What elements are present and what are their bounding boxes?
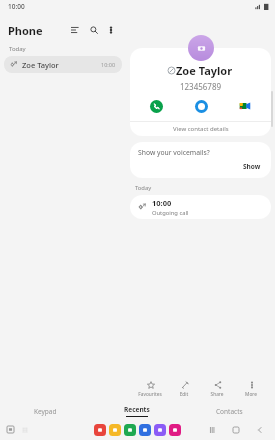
staticText: Show [243,162,261,171]
button[interactable]: Call [148,98,164,114]
button[interactable]: Recents [91,403,183,419]
button[interactable]: Apps [19,424,30,435]
staticText: Show your voicemails? [138,148,210,157]
button[interactable]: More [235,380,267,398]
staticText: Contacts [216,407,243,416]
staticText: Zoe Taylor [176,63,233,78]
staticText: Favourites [134,391,166,398]
button[interactable]: Message [193,98,209,114]
staticText: 123456789 [130,81,271,92]
staticText: Today [135,184,152,192]
button[interactable]: View contact details [130,122,271,136]
button[interactable]: Keypad [0,403,91,419]
button[interactable]: Video call [237,98,253,114]
staticText: Outgoing call [152,209,189,217]
button[interactable]: App 1 [109,424,121,436]
button[interactable]: 10:00 [130,195,271,219]
staticText: Edit [168,391,200,398]
button[interactable]: Multi window [5,424,16,435]
staticText: Phone [8,23,43,38]
button[interactable]: Favourites [134,380,166,398]
button[interactable]: Zoe Taylor [4,56,122,73]
staticText: 10:00 [101,61,116,68]
button[interactable]: App 3 [139,424,151,436]
staticText: Recents [124,405,150,414]
button[interactable]: App 2 [124,424,136,436]
button[interactable]: Edit [168,380,200,398]
button[interactable]: Recent apps [205,423,219,437]
button[interactable]: Share [201,380,233,398]
button[interactable]: Contacts [183,403,275,419]
staticText: View contact details [173,125,229,133]
button[interactable]: App 4 [154,424,166,436]
button[interactable]: Back [253,423,267,437]
staticText: Keypad [34,407,57,416]
button[interactable]: More options [104,23,118,37]
button[interactable]: Home [229,423,243,437]
button[interactable]: App 0 [94,424,106,436]
staticText: 10:00 [8,2,25,11]
staticText: Zoe Taylor [22,60,59,70]
button[interactable]: Show [241,161,263,172]
staticText: 10:00 [152,198,172,208]
staticText: Today [9,45,26,53]
staticText: Share [201,391,233,398]
button[interactable]: Search [86,22,102,38]
staticText: More [235,391,267,398]
button[interactable]: App 5 [169,424,181,436]
button[interactable]: Sort [67,22,83,38]
